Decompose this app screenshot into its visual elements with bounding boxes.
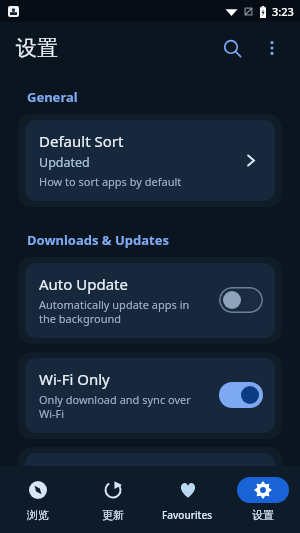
button[interactable]: 设置 <box>225 466 300 533</box>
button[interactable]: Default Sort <box>25 120 275 201</box>
staticText: Downloads & Updates <box>27 231 169 249</box>
other: Open Sync Interval <box>237 477 263 503</box>
staticText: Only download and sync over Wi-Fi <box>39 392 191 421</box>
staticText: 设置 <box>16 35 58 61</box>
button[interactable]: More options <box>252 28 292 68</box>
staticText: 更新 <box>102 508 124 522</box>
staticText: How often to check for updates <box>39 507 201 515</box>
button[interactable]: Auto Update <box>25 263 275 338</box>
staticText: 6 hours <box>39 487 84 504</box>
button[interactable]: Sync Interval <box>25 453 275 527</box>
staticText: 浏览 <box>27 508 49 522</box>
button[interactable]: Favourites <box>150 466 225 533</box>
button[interactable]: Wi-Fi Only toggle <box>219 382 263 408</box>
staticText: Default Sort <box>39 131 124 151</box>
button[interactable]: 更新 <box>75 466 150 533</box>
other: Open Default Sort <box>237 147 263 173</box>
button[interactable]: Search <box>212 28 252 68</box>
staticText: Sync Interval <box>39 464 130 484</box>
staticText: Wi-Fi Only <box>39 369 110 389</box>
button[interactable]: Auto Update toggle <box>219 287 263 313</box>
staticText: Updated <box>39 154 90 171</box>
staticText: 3:23 <box>272 4 294 19</box>
button[interactable]: Wi-Fi Only <box>25 358 275 433</box>
staticText: 设置 <box>252 508 274 522</box>
staticText: How to sort apps by default <box>39 174 182 189</box>
staticText: Auto Update <box>39 274 128 294</box>
staticText: General <box>27 88 78 106</box>
button[interactable]: 浏览 <box>0 466 75 533</box>
staticText: Favourites <box>162 508 213 522</box>
staticText: Automatically update apps in the backgro… <box>39 297 190 326</box>
